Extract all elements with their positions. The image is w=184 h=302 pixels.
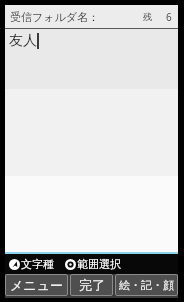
other: Character type — [9, 259, 20, 270]
staticText: 文字種 — [21, 257, 54, 271]
staticText: 絵・記・顔 — [119, 278, 174, 292]
staticText: 友人 — [9, 32, 37, 50]
staticText: 範囲選択 — [77, 257, 121, 271]
staticText: 受信フォルダ名： — [10, 10, 100, 24]
button[interactable]: 完了 — [70, 274, 113, 296]
button[interactable]: メニュー — [5, 274, 68, 296]
button[interactable]: Range select — [65, 257, 121, 271]
staticText: 6 — [166, 10, 172, 24]
other: Range select — [65, 259, 76, 270]
staticText: 完了 — [79, 277, 105, 293]
staticText: 残 — [143, 11, 152, 22]
staticText: メニュー — [10, 277, 63, 293]
button[interactable]: 絵・記・顔 — [115, 274, 178, 296]
button[interactable]: Character type — [9, 257, 54, 271]
